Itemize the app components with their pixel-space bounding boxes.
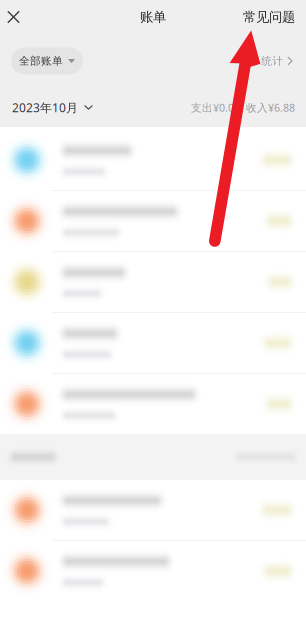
button[interactable] — [0, 541, 306, 601]
button[interactable] — [0, 252, 306, 312]
staticText: 支出¥0.00 收入¥6.88 — [191, 100, 295, 115]
button[interactable] — [0, 130, 306, 190]
button[interactable]: Close — [0, 1, 32, 32]
button[interactable]: 全部账单 — [11, 47, 83, 74]
button[interactable] — [0, 480, 306, 540]
staticText: 2023年10月 — [12, 99, 78, 115]
staticText: 全部账单 — [19, 54, 63, 67]
button[interactable] — [0, 313, 306, 373]
button[interactable] — [0, 191, 306, 251]
button[interactable]: 2023年10月 — [0, 91, 93, 123]
button[interactable]: 常见问题 — [231, 0, 306, 34]
staticText: 常见问题 — [243, 9, 295, 25]
button[interactable] — [0, 374, 306, 434]
staticText: 统计 — [261, 54, 283, 67]
staticText: 账单 — [140, 9, 166, 25]
button[interactable]: 统计 — [261, 46, 306, 75]
